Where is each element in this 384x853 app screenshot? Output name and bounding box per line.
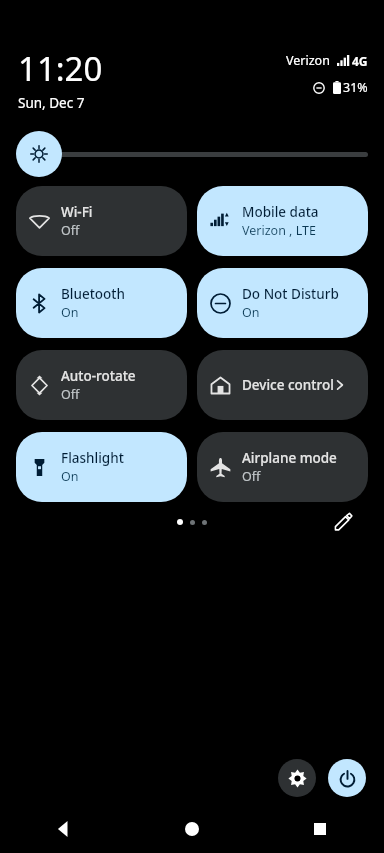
staticText: Do Not Disturb [242,285,339,303]
staticText: Bluetooth [61,285,125,303]
staticText: On [61,304,79,321]
button[interactable]: Home [128,805,256,853]
button[interactable]: Wi-Fi [16,186,187,256]
staticText: 31% [343,79,368,96]
staticText: Airplane mode [242,449,337,467]
staticText: Verizon , LTE [242,222,316,239]
button[interactable]: Auto-rotate [16,350,187,420]
staticText: Mobile data [242,203,319,221]
staticText: Device control [242,376,334,394]
staticText: Auto-rotate [61,367,136,385]
button[interactable]: Back [0,805,128,853]
staticText: Off [242,468,261,485]
staticText: Sun, Dec 7 [18,94,85,112]
button[interactable]: Recents [256,805,384,853]
staticText: 4G [352,53,368,69]
button[interactable]: Power [328,759,366,797]
staticText: Verizon [286,52,330,69]
button[interactable]: Mobile data [197,186,368,256]
button[interactable]: Bluetooth [16,268,187,338]
button[interactable]: Airplane mode [197,432,368,502]
staticText: Flashlight [61,449,124,467]
button[interactable]: Do Not Disturb [197,268,368,338]
staticText: Wi-Fi [61,203,93,221]
button[interactable]: Edit tiles [328,507,358,537]
button[interactable]: Flashlight [16,432,187,502]
staticText: Off [61,222,80,239]
staticText: 11:20 [18,46,103,91]
button[interactable]: Brightness [16,130,368,178]
staticText: On [61,468,79,485]
button[interactable]: Device control [197,350,368,420]
button[interactable]: Settings [278,759,316,797]
staticText: On [242,304,260,321]
staticText: Off [61,386,80,403]
